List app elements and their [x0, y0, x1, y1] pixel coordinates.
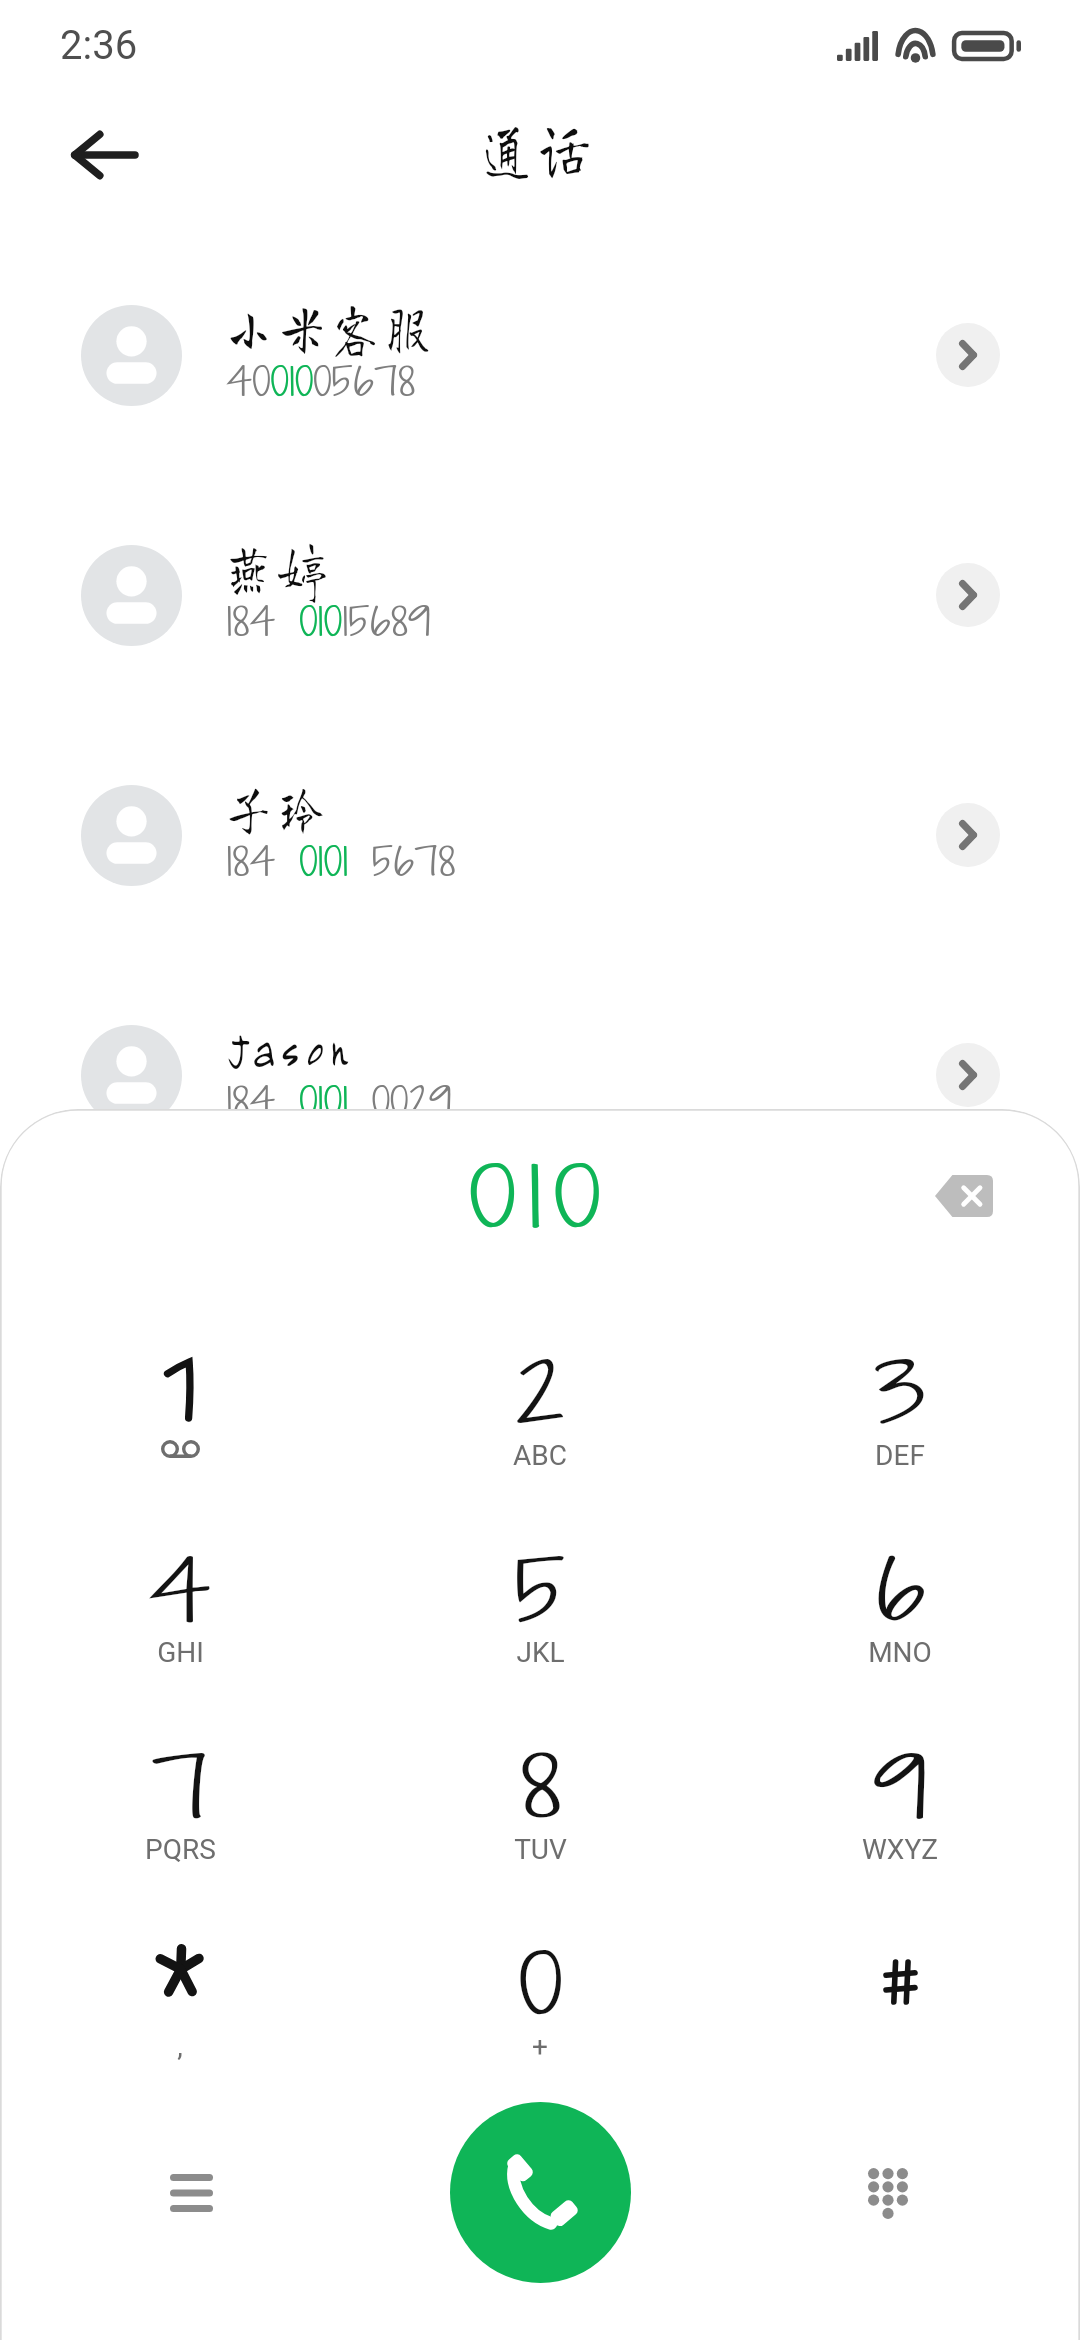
staticText: 184 01015689: [226, 595, 432, 649]
staticText: 9: [872, 1731, 928, 1844]
staticText: 6: [875, 1534, 926, 1647]
button[interactable]: Jason: [0, 955, 1080, 1195]
staticText: 小米客服: [226, 295, 440, 357]
button[interactable]: 8: [360, 1734, 720, 1931]
button[interactable]: Backspace: [909, 1141, 1019, 1251]
button[interactable]: 0: [360, 1931, 720, 2128]
button[interactable]: Menu: [136, 2138, 246, 2248]
staticText: JKL: [516, 1636, 565, 1669]
staticText: DEF: [875, 1439, 925, 1472]
button[interactable]: Open contact: [936, 563, 1000, 627]
button[interactable]: 7: [0, 1734, 360, 1931]
button[interactable]: 3: [720, 1340, 1080, 1537]
staticText: PQRS: [145, 1833, 216, 1866]
staticText: TUV: [514, 1833, 567, 1866]
staticText: 通话: [483, 112, 597, 182]
button[interactable]: 燕婷: [0, 475, 1080, 715]
staticText: ,: [177, 2030, 183, 2063]
staticText: 3: [874, 1337, 926, 1450]
button[interactable]: 4: [0, 1537, 360, 1734]
button[interactable]: 6: [720, 1537, 1080, 1734]
button[interactable]: Open contact: [936, 323, 1000, 387]
staticText: 2:36: [60, 22, 138, 69]
button[interactable]: Open contact: [936, 1043, 1000, 1107]
staticText: +: [532, 2030, 548, 2063]
button[interactable]: ,: [0, 1931, 360, 2128]
button[interactable]: Open contact: [936, 803, 1000, 867]
button[interactable]: Call: [450, 2102, 631, 2283]
button[interactable]: 5: [360, 1537, 720, 1734]
staticText: 0: [518, 1928, 563, 2041]
staticText: GHI: [157, 1636, 204, 1669]
staticText: 184 0101 0029: [226, 1075, 452, 1129]
button[interactable]: [0, 1340, 360, 1537]
staticText: MNO: [868, 1636, 932, 1669]
staticText: 4: [148, 1534, 212, 1647]
button[interactable]: 9: [720, 1734, 1080, 1931]
staticText: 8: [519, 1731, 562, 1844]
button[interactable]: 2: [360, 1340, 720, 1537]
staticText: ABC: [513, 1439, 567, 1472]
button[interactable]: Back: [48, 100, 158, 210]
staticText: 010: [469, 1141, 611, 1254]
button[interactable]: [720, 1931, 1080, 2128]
button[interactable]: Dialpad: [833, 2138, 943, 2248]
staticText: Jason: [226, 1015, 355, 1077]
staticText: 4001005678: [226, 355, 415, 409]
staticText: 7: [151, 1731, 209, 1844]
button[interactable]: 子玲: [0, 715, 1080, 955]
staticText: 燕婷: [226, 535, 333, 597]
staticText: 184 0101 5678: [226, 835, 456, 889]
button[interactable]: 小米客服: [0, 235, 1080, 475]
staticText: 2: [515, 1337, 566, 1450]
staticText: 子玲: [226, 775, 333, 837]
staticText: 5: [514, 1534, 566, 1647]
staticText: WXYZ: [862, 1833, 938, 1866]
